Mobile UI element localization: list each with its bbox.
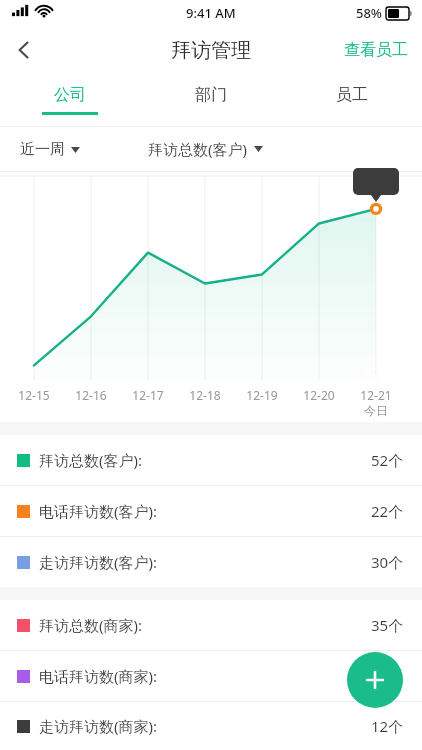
staticText: 12-17 (123, 387, 173, 403)
staticText: 12-15 (9, 387, 59, 403)
staticText: 近一周 (20, 140, 65, 159)
staticText: 查看员工 (344, 40, 408, 60)
button[interactable]: Add (347, 652, 403, 708)
button[interactable]: 电话拜访数(客户): (0, 486, 422, 536)
staticText: 12-16 (66, 387, 116, 403)
staticText: 拜访管理 (171, 38, 251, 63)
staticText: 12-21 (351, 387, 401, 403)
staticText: 拜访总数(客户) (148, 139, 248, 159)
staticText: 12-18 (180, 387, 230, 403)
staticText: 12-20 (294, 387, 344, 403)
staticText: 电话拜访数(商家): (39, 666, 158, 686)
staticText: 12-19 (237, 387, 287, 403)
button[interactable]: 查看员工 (344, 40, 408, 60)
button[interactable]: 拜访总数(客户) (148, 139, 263, 159)
button[interactable]: 员工 (281, 74, 422, 126)
staticText: 电话拜访数(客户): (39, 501, 158, 521)
staticText: 9:41 AM (186, 4, 236, 22)
button[interactable]: 部门 (140, 74, 281, 126)
staticText: 58% (356, 4, 382, 22)
staticText: 员工 (336, 85, 368, 105)
button[interactable]: 公司 (0, 74, 140, 126)
staticText: 30个 (371, 552, 404, 572)
staticText: 走访拜访数(商家): (39, 716, 158, 736)
staticText: 12个 (371, 716, 404, 736)
staticText: 今日 (351, 403, 401, 418)
button[interactable]: Back (0, 26, 48, 74)
staticText: 52个 (371, 450, 404, 470)
button[interactable]: 拜访总数(客户): (0, 435, 422, 485)
staticText: 公司 (54, 85, 86, 105)
staticText: 35个 (371, 615, 404, 635)
button[interactable]: 走访拜访数(客户): (0, 537, 422, 587)
staticText: 走访拜访数(客户): (39, 552, 158, 572)
staticText: 拜访总数(客户): (39, 450, 143, 470)
button[interactable]: 近一周 (20, 140, 80, 159)
staticText: 22个 (371, 501, 404, 521)
button[interactable]: 走访拜访数(商家): (0, 702, 422, 750)
staticText: 拜访总数(商家): (39, 615, 143, 635)
button[interactable]: 电话拜访数(商家): (0, 651, 422, 701)
staticText: 部门 (195, 85, 227, 105)
button[interactable]: 拜访总数(商家): (0, 600, 422, 650)
